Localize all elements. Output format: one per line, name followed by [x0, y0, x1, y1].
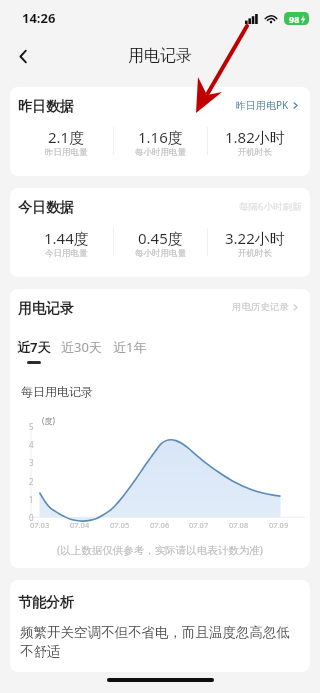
- staticText: 07.07: [189, 520, 209, 530]
- staticText: 近30天: [61, 338, 102, 356]
- staticText: 2.1度: [48, 127, 85, 147]
- staticText: 用电历史记录: [232, 301, 289, 313]
- staticText: 1: [29, 494, 34, 505]
- staticText: 3: [29, 457, 34, 468]
- staticText: 每小时用电量: [135, 248, 186, 259]
- staticText: 昨日数据: [18, 98, 74, 116]
- staticText: 07.05: [110, 520, 130, 530]
- staticText: 14:26: [22, 9, 56, 27]
- staticText: 开机时长: [238, 248, 272, 259]
- staticText: 昨日用电PK: [236, 98, 289, 112]
- staticText: 用电记录: [18, 300, 74, 318]
- button[interactable]: 近7天: [17, 338, 51, 364]
- staticText: 1.44度: [44, 228, 89, 248]
- staticText: 1.82小时: [225, 127, 285, 147]
- staticText: 07.09: [269, 520, 289, 530]
- staticText: (度): [42, 415, 55, 426]
- staticText: 4: [29, 439, 34, 450]
- staticText: 近7天: [17, 338, 51, 356]
- staticText: 98: [289, 13, 300, 25]
- staticText: 2: [29, 476, 34, 487]
- staticText: 今日数据: [18, 199, 74, 217]
- staticText: 近1年: [113, 338, 147, 356]
- button[interactable]: Back: [5, 38, 41, 74]
- staticText: (以上数据仅供参考，实际请以电表计数为准): [10, 543, 310, 557]
- staticText: 节能分析: [18, 594, 74, 612]
- button[interactable]: 用电历史记录: [232, 301, 299, 313]
- staticText: 07.06: [150, 520, 170, 530]
- button[interactable]: 近1年: [113, 338, 147, 361]
- staticText: 3.22小时: [225, 228, 285, 248]
- staticText: 07.03: [30, 520, 50, 530]
- staticText: 昨日用电量: [45, 147, 88, 158]
- staticText: 每小时用电量: [135, 147, 186, 158]
- staticText: 07.04: [70, 520, 90, 530]
- staticText: 每隔6小时刷新: [239, 200, 302, 213]
- staticText: 开机时长: [238, 147, 272, 158]
- staticText: 0.45度: [138, 228, 183, 248]
- staticText: 频繁开关空调不但不省电，而且温度忽高忽低 不舒适: [20, 624, 290, 660]
- staticText: 1.16度: [138, 127, 183, 147]
- button[interactable]: 近30天: [61, 338, 102, 361]
- staticText: 5: [29, 421, 34, 432]
- staticText: 07.08: [229, 520, 249, 530]
- staticText: 每日用电记录: [21, 384, 93, 399]
- button[interactable]: 昨日用电PK: [236, 98, 299, 112]
- staticText: 0: [29, 512, 34, 523]
- staticText: 今日用电量: [45, 248, 88, 259]
- staticText: 用电记录: [128, 46, 192, 66]
